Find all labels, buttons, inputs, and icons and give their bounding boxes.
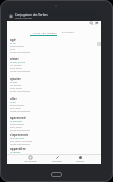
button[interactable]: agir (7, 38, 101, 56)
staticText: TOUS LES VERBES (33, 31, 57, 34)
staticText: to like, to love (10, 61, 25, 64)
staticText: forme pronominale (10, 70, 31, 73)
staticText: to notice that (10, 137, 25, 140)
button[interactable]: aller (7, 97, 101, 115)
button[interactable] (7, 10, 101, 21)
staticText: avoir, direct (10, 126, 22, 129)
staticText: 3ème groupe (10, 104, 24, 107)
staticText: avoir, direct (10, 67, 22, 70)
staticText: avoir, direct (10, 87, 22, 90)
staticText: être, direct, intransitif (10, 140, 33, 143)
staticText: Recherche (76, 160, 85, 162)
staticText: 2ème groupe (10, 45, 24, 48)
staticText: 576 verbes (62, 31, 74, 34)
staticText: 3ème groupe (10, 123, 24, 126)
staticText: 1er groupe (10, 84, 22, 87)
staticText: forme pronominale (10, 110, 31, 113)
staticText: forme pronominale (10, 90, 31, 93)
staticText: to perceive (10, 120, 22, 123)
staticText: to act (10, 42, 17, 45)
staticText: apercevoir (10, 116, 26, 120)
button[interactable]: apparaître (7, 147, 101, 165)
staticText: Liste des verbes (24, 160, 37, 162)
button[interactable]: apercevoir (7, 116, 101, 134)
button[interactable]: s'apercevoir (7, 133, 101, 151)
staticText: Conjugaison (52, 160, 62, 162)
staticText: aimer (10, 57, 19, 61)
staticText: aller (10, 97, 17, 101)
staticText: être, direct (10, 107, 22, 110)
button[interactable]: Recherche (70, 154, 91, 164)
staticText: to appear (10, 151, 21, 154)
staticText: avoir (10, 48, 16, 51)
staticText: Conjugaison des Verbes (15, 13, 48, 17)
staticText: forme pronominale (10, 51, 31, 54)
staticText: forme pronominale (10, 129, 31, 132)
staticText: to add (10, 81, 17, 84)
button[interactable] (89, 21, 101, 26)
button[interactable]: aimer (7, 57, 101, 75)
button[interactable]: Conjugaison (47, 154, 67, 164)
staticText: s'apercevoir (10, 133, 29, 137)
staticText: 1er groupe (10, 64, 22, 67)
staticText: apparaître (10, 147, 26, 151)
staticText: Verbes Français (15, 17, 32, 20)
staticText: ajouter (10, 77, 21, 81)
staticText: forme pronominale (10, 143, 31, 146)
button[interactable]: ajouter (7, 77, 101, 95)
staticText: agir (10, 38, 16, 42)
staticText: to go (10, 101, 16, 104)
button[interactable]: Liste des verbes (20, 154, 41, 164)
